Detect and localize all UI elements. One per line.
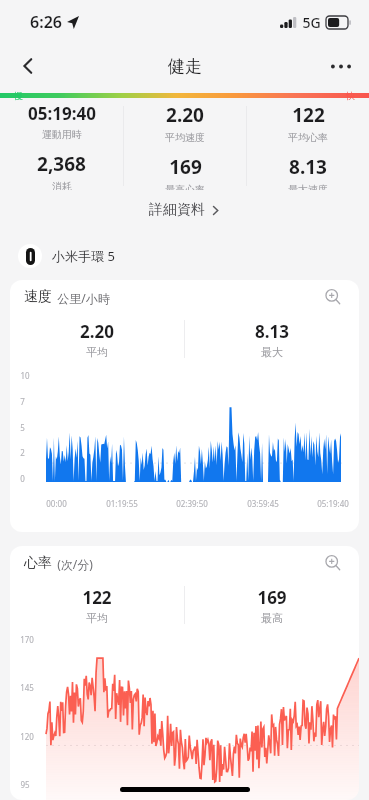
staticText: 小米手環 5 xyxy=(52,247,115,265)
staticText: 169 xyxy=(257,586,287,609)
staticText: 5 xyxy=(20,422,25,433)
staticText: 最大 xyxy=(261,345,283,359)
staticText: 169 xyxy=(169,154,202,180)
staticText: 122 xyxy=(292,102,325,128)
staticText: 運動用時 xyxy=(42,128,82,141)
staticText: 120 xyxy=(20,731,34,742)
button[interactable]: Back xyxy=(8,46,48,86)
staticText: 122 xyxy=(82,586,112,609)
staticText: 最高 xyxy=(261,611,283,625)
button[interactable]: 小米手環 5 xyxy=(0,238,369,274)
staticText: 2,368 xyxy=(37,151,86,177)
staticText: 01:19:55 xyxy=(106,498,138,509)
staticText: 詳細資料 xyxy=(149,201,205,219)
staticText: 快 xyxy=(346,90,355,101)
staticText: 消耗 xyxy=(52,180,72,190)
staticText: 慢 xyxy=(14,90,23,101)
staticText: (次/分) xyxy=(57,556,93,572)
staticText: 03:59:45 xyxy=(247,498,279,509)
staticText: 00:00 xyxy=(46,498,67,509)
staticText: 05:19:40 xyxy=(317,498,349,509)
staticText: 2 xyxy=(20,447,25,458)
staticText: 速度 xyxy=(24,288,52,306)
staticText: 2.20 xyxy=(166,102,204,128)
staticText: 平均速度 xyxy=(165,131,205,144)
staticText: 2.20 xyxy=(80,320,114,343)
staticText: 170 xyxy=(20,634,34,645)
staticText: 平均 xyxy=(86,345,108,359)
staticText: 心率 xyxy=(24,554,52,572)
staticText: 0 xyxy=(20,473,25,484)
button[interactable]: 詳細資料 xyxy=(0,190,369,230)
staticText: 02:39:50 xyxy=(176,498,208,509)
staticText: 10 xyxy=(20,370,30,381)
staticText: 最大速度 xyxy=(288,183,328,190)
button[interactable]: Zoom in chart xyxy=(321,285,345,309)
staticText: 平均 xyxy=(86,611,108,625)
staticText: 健走 xyxy=(168,56,202,77)
staticText: 145 xyxy=(20,682,34,693)
staticText: 公里/小時 xyxy=(57,290,110,306)
staticText: 05:19:40 xyxy=(28,102,96,125)
button[interactable]: Zoom in heart rate chart xyxy=(321,551,345,575)
button[interactable]: More options xyxy=(321,46,361,86)
staticText: 8.13 xyxy=(255,320,289,343)
staticText: 6:26 xyxy=(30,11,62,33)
staticText: 7 xyxy=(20,396,25,407)
staticText: 8.13 xyxy=(289,154,327,180)
staticText: 5G xyxy=(302,13,321,32)
staticText: 平均心率 xyxy=(288,131,328,144)
staticText: 最高心率 xyxy=(165,183,205,190)
staticText: 95 xyxy=(20,779,30,790)
